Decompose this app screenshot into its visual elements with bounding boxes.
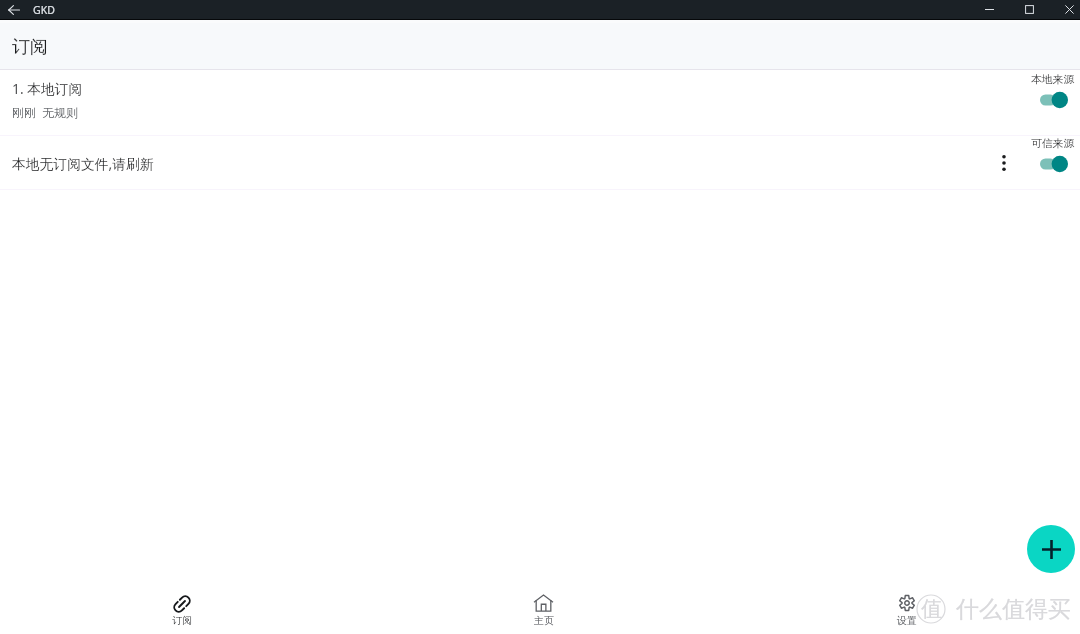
button[interactable]: 设置: [725, 580, 1080, 634]
button[interactable]: Minimize: [969, 0, 1009, 19]
staticText: 1. 本地订阅: [12, 79, 83, 98]
staticText: 值: [921, 596, 942, 622]
button[interactable]: 本地无订阅文件,请刷新: [0, 136, 1080, 190]
button[interactable]: Add subscription: [1027, 525, 1075, 573]
button[interactable]: Toggle: [1040, 155, 1068, 173]
staticText: 可信来源: [1031, 137, 1075, 151]
staticText: 什么值得买: [956, 595, 1071, 624]
staticText: 订阅: [12, 36, 48, 59]
button[interactable]: Toggle: [1040, 91, 1068, 109]
staticText: 订阅: [172, 614, 192, 627]
button[interactable]: Back: [0, 0, 27, 19]
button[interactable]: More options: [991, 150, 1017, 176]
button[interactable]: Close: [1049, 0, 1080, 19]
button[interactable]: 订阅: [0, 580, 362, 634]
staticText: 刚刚 无规则: [12, 104, 79, 120]
staticText: 主页: [534, 614, 554, 627]
button[interactable]: Maximize: [1009, 0, 1049, 19]
staticText: 设置: [897, 614, 917, 627]
staticText: GKD: [33, 3, 55, 17]
button[interactable]: 1. 本地订阅: [0, 70, 1080, 136]
staticText: 本地无订阅文件,请刷新: [12, 154, 154, 173]
staticText: 本地来源: [1031, 73, 1075, 87]
button[interactable]: 主页: [362, 580, 725, 634]
